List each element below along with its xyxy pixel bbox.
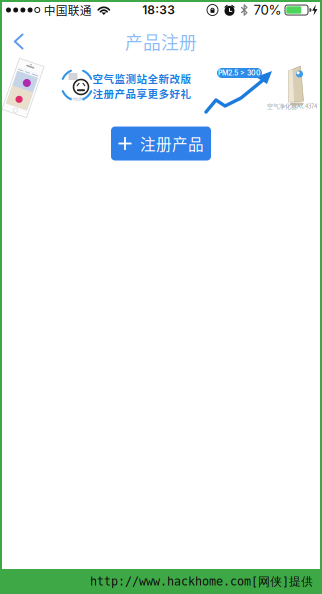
staticText: 空气净化器AC4374	[267, 102, 317, 110]
staticText: 空气监测站全新改版	[92, 71, 191, 86]
staticText: 注册产品	[140, 132, 204, 155]
staticText: PHILIPS	[69, 97, 85, 101]
button[interactable]: Back	[0, 20, 40, 63]
staticText: 70%	[253, 2, 281, 18]
staticText: 产品注册	[125, 29, 197, 54]
staticText: PM2.5 > 300	[218, 69, 261, 77]
staticText: 18:33	[142, 3, 175, 17]
staticText: 注册产品享更多好礼	[92, 86, 191, 101]
staticText: 中国联通	[44, 1, 92, 18]
button[interactable]: 注册产品	[111, 126, 211, 160]
staticText: http://www.hackhome.com[网侠]提供	[90, 574, 313, 589]
